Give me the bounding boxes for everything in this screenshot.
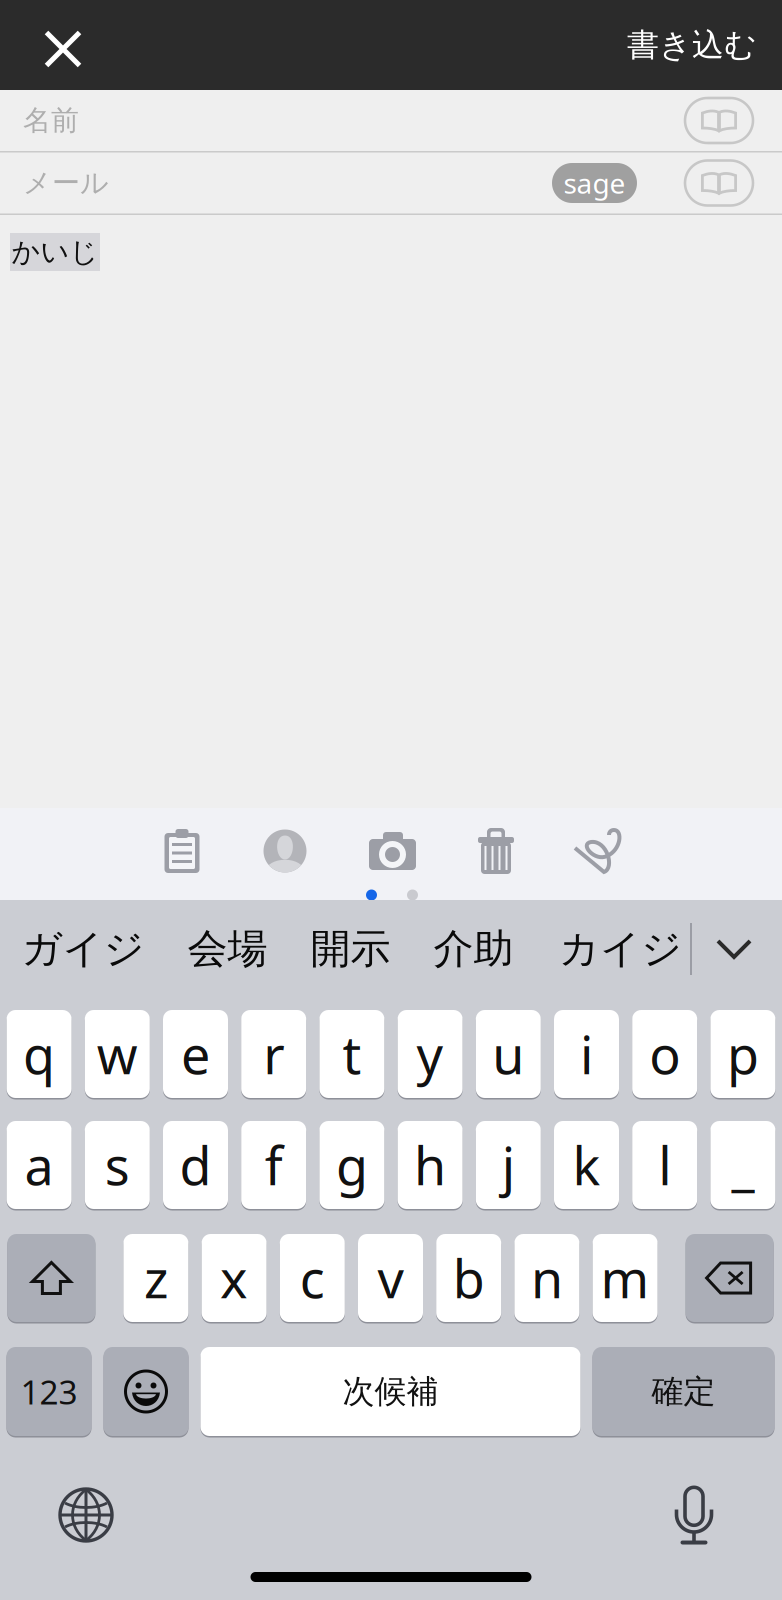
staticText: 書き込む — [627, 25, 757, 65]
button[interactable]: r — [241, 1010, 306, 1098]
staticText: n — [531, 1243, 563, 1313]
button[interactable]: e — [163, 1010, 228, 1098]
button[interactable]: Delete — [449, 818, 543, 884]
staticText: b — [453, 1243, 485, 1313]
staticText: sage — [563, 164, 625, 202]
button[interactable]: l — [632, 1121, 697, 1209]
staticText: かいじ — [11, 235, 98, 269]
staticText: 開示 — [310, 924, 390, 973]
staticText: r — [263, 1019, 284, 1089]
staticText: _ — [731, 1130, 754, 1200]
button[interactable]: h — [398, 1121, 463, 1209]
button[interactable]: y — [398, 1010, 463, 1098]
button[interactable]: d — [163, 1121, 228, 1209]
button[interactable]: Templates — [130, 818, 234, 884]
button[interactable]: t — [319, 1010, 384, 1098]
button[interactable]: 書き込む — [627, 0, 782, 90]
button[interactable] — [686, 1234, 774, 1322]
staticText: v — [377, 1243, 403, 1313]
staticText: l — [658, 1130, 671, 1200]
staticText: 次候補 — [342, 1372, 438, 1411]
button[interactable]: 会場 — [166, 912, 289, 986]
staticText: o — [649, 1019, 680, 1089]
staticText: z — [144, 1243, 168, 1313]
staticText: i — [580, 1019, 593, 1089]
staticText: 会場 — [187, 924, 267, 973]
staticText: q — [23, 1019, 55, 1089]
staticText: s — [105, 1130, 130, 1200]
button[interactable]: i — [554, 1010, 619, 1098]
staticText: e — [181, 1019, 210, 1089]
button[interactable]: Dictation — [648, 1477, 740, 1553]
button[interactable]: Close — [0, 0, 126, 90]
staticText: a — [25, 1130, 54, 1200]
button[interactable]: p — [710, 1010, 775, 1098]
button[interactable]: 確定 — [592, 1347, 774, 1436]
button[interactable]: 次候補 — [200, 1347, 580, 1436]
button[interactable]: Camera — [336, 818, 449, 884]
staticText: f — [265, 1130, 283, 1200]
staticText: d — [179, 1130, 211, 1200]
button[interactable]: q — [7, 1010, 72, 1098]
staticText: c — [300, 1243, 325, 1313]
button[interactable] — [103, 1347, 188, 1436]
button[interactable]: 開示 — [289, 912, 412, 986]
staticText: y — [417, 1019, 444, 1089]
button[interactable]: History — [681, 155, 757, 211]
button[interactable]: o — [632, 1010, 697, 1098]
button[interactable]: カイジ — [535, 912, 690, 986]
button[interactable]: Name — [234, 818, 336, 884]
staticText: k — [572, 1130, 600, 1200]
button[interactable]: m — [593, 1234, 658, 1322]
staticText: j — [502, 1130, 515, 1200]
button[interactable]: g — [319, 1121, 384, 1209]
button[interactable]: z — [123, 1234, 188, 1322]
staticText: 確定 — [651, 1372, 715, 1411]
staticText: m — [601, 1243, 650, 1313]
button[interactable]: w — [85, 1010, 150, 1098]
staticText: h — [414, 1130, 446, 1200]
staticText: 123 — [20, 1369, 77, 1414]
button[interactable]: 123 — [6, 1347, 91, 1436]
staticText: メール — [23, 166, 109, 200]
button[interactable]: a — [7, 1121, 72, 1209]
button[interactable]: x — [202, 1234, 267, 1322]
button[interactable]: u — [476, 1010, 541, 1098]
button[interactable]: Handwriting — [543, 818, 649, 884]
button[interactable]: b — [436, 1234, 501, 1322]
button[interactable]: _ — [710, 1121, 775, 1209]
button[interactable]: s — [85, 1121, 150, 1209]
button[interactable]: Switch keyboard — [40, 1477, 132, 1553]
staticText: w — [97, 1019, 138, 1089]
button[interactable]: History — [681, 92, 757, 148]
staticText: x — [220, 1243, 248, 1313]
button[interactable]: ガイジ — [0, 912, 166, 986]
staticText: u — [492, 1019, 524, 1089]
button[interactable]: c — [280, 1234, 345, 1322]
button[interactable]: f — [241, 1121, 306, 1209]
button[interactable]: j — [476, 1121, 541, 1209]
button[interactable]: 介助 — [412, 912, 535, 986]
staticText: t — [342, 1019, 361, 1089]
staticText: 介助 — [433, 924, 513, 973]
staticText: 名前 — [23, 103, 79, 138]
staticText: ガイジ — [21, 924, 144, 973]
button[interactable]: k — [554, 1121, 619, 1209]
staticText: カイジ — [559, 924, 682, 973]
staticText: p — [727, 1019, 759, 1089]
button[interactable]: Hide suggestions — [700, 912, 768, 986]
button[interactable]: n — [514, 1234, 579, 1322]
button[interactable] — [7, 1234, 95, 1322]
staticText: g — [336, 1130, 368, 1200]
button[interactable]: v — [358, 1234, 423, 1322]
